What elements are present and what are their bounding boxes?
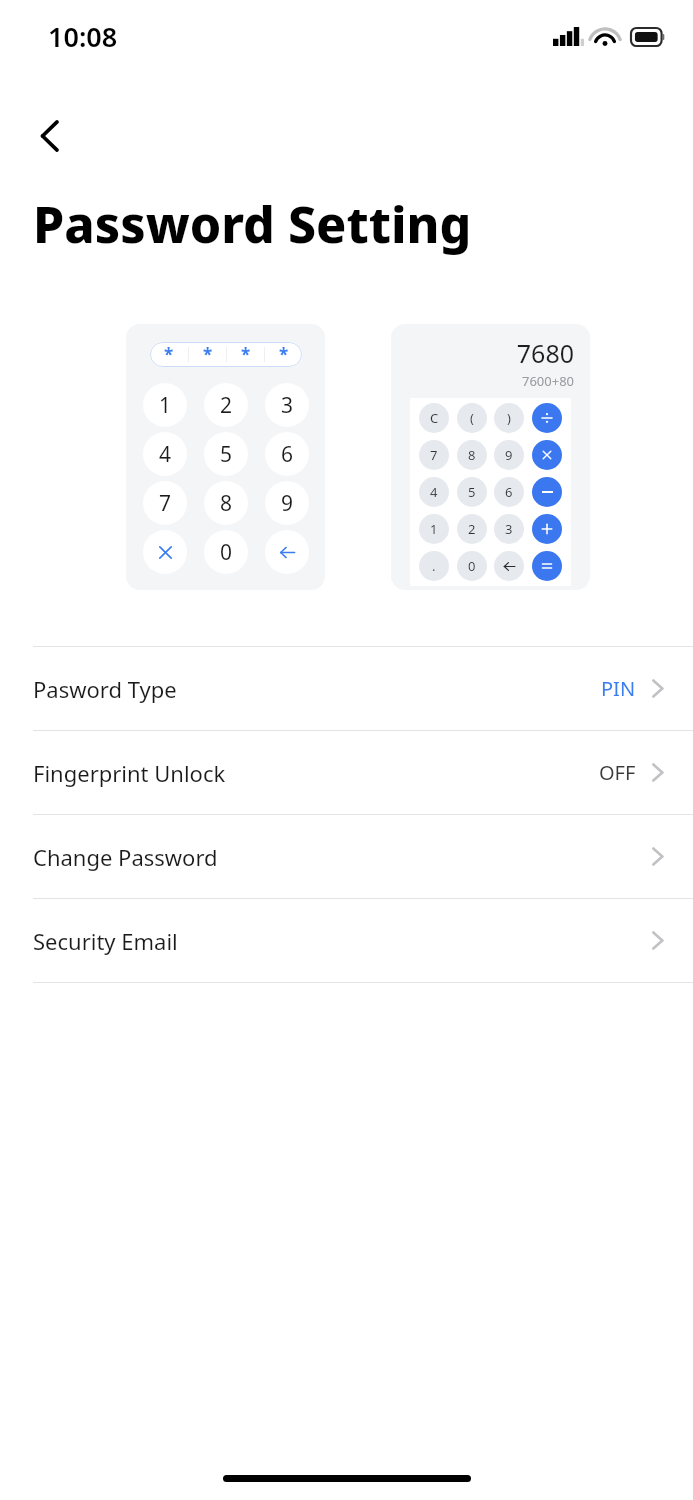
staticText: Change Password xyxy=(33,842,218,872)
button[interactable]: 9 xyxy=(494,440,524,470)
button[interactable]: Clear xyxy=(143,530,187,574)
staticText: Security Email xyxy=(33,926,178,956)
button[interactable]: 0 xyxy=(204,530,248,574)
button[interactable]: Change Password xyxy=(0,815,693,898)
button[interactable]: Backspace xyxy=(494,551,524,581)
staticText: * xyxy=(164,343,174,366)
staticText: 7 xyxy=(159,489,172,518)
staticText: 7 xyxy=(430,446,438,464)
button[interactable] xyxy=(532,514,562,544)
staticText: 5 xyxy=(220,440,233,469)
staticText: 8 xyxy=(220,489,233,518)
staticText: 6 xyxy=(505,483,513,501)
button[interactable]: 8 xyxy=(204,481,248,525)
staticText: 9 xyxy=(281,489,294,518)
staticText: 3 xyxy=(505,520,513,538)
staticText: 2 xyxy=(220,391,233,420)
button[interactable]: Backspace xyxy=(265,530,309,574)
button[interactable]: 2 xyxy=(204,383,248,427)
button[interactable]: Security Email xyxy=(0,899,693,982)
button[interactable]: 5 xyxy=(204,432,248,476)
button[interactable]: 4 xyxy=(419,477,449,507)
staticText: * xyxy=(203,343,213,366)
button[interactable] xyxy=(532,440,562,470)
staticText: Pasword Type xyxy=(33,674,177,704)
staticText: 6 xyxy=(281,440,294,469)
staticText: 7600+80 xyxy=(391,372,574,390)
button[interactable]: 3 xyxy=(494,514,524,544)
staticText: ( xyxy=(470,409,474,427)
button[interactable]: . xyxy=(419,551,449,581)
button[interactable]: 3 xyxy=(265,383,309,427)
button[interactable]: 7680 xyxy=(391,324,590,590)
button[interactable]: 4 xyxy=(143,432,187,476)
staticText: 1 xyxy=(430,520,438,538)
staticText: 0 xyxy=(468,557,476,575)
staticText: 8 xyxy=(468,446,476,464)
button[interactable]: Pasword Type xyxy=(0,647,693,730)
staticText: * xyxy=(279,343,289,366)
button[interactable]: 6 xyxy=(494,477,524,507)
button[interactable]: 2 xyxy=(457,514,487,544)
staticText: 5 xyxy=(468,483,476,501)
staticText: C xyxy=(430,409,439,427)
button[interactable]: 1 xyxy=(143,383,187,427)
button[interactable]: Back xyxy=(24,110,76,162)
button[interactable]: 1 xyxy=(419,514,449,544)
button[interactable]: 5 xyxy=(457,477,487,507)
staticText: 7680 xyxy=(391,336,574,370)
staticText: PIN xyxy=(601,675,636,702)
staticText: 3 xyxy=(281,391,294,420)
staticText: 9 xyxy=(505,446,513,464)
staticText: 0 xyxy=(220,538,233,567)
staticText: OFF xyxy=(599,759,636,786)
button[interactable]: 7 xyxy=(143,481,187,525)
staticText: 1 xyxy=(159,391,172,420)
button[interactable]: Fingerprint Unlock xyxy=(0,731,693,814)
button[interactable]: 7 xyxy=(419,440,449,470)
button[interactable]: 6 xyxy=(265,432,309,476)
staticText: ) xyxy=(507,409,511,427)
staticText: 10:08 xyxy=(48,18,118,55)
staticText: . xyxy=(432,557,436,575)
button[interactable]: ( xyxy=(457,403,487,433)
button[interactable] xyxy=(532,477,562,507)
button[interactable]: 8 xyxy=(457,440,487,470)
button[interactable]: * xyxy=(126,324,325,590)
button[interactable]: ) xyxy=(494,403,524,433)
staticText: Password Setting xyxy=(33,190,472,258)
button[interactable]: 0 xyxy=(457,551,487,581)
button[interactable] xyxy=(532,551,562,581)
staticText: 4 xyxy=(159,440,172,469)
staticText: Fingerprint Unlock xyxy=(33,758,226,788)
button[interactable]: 9 xyxy=(265,481,309,525)
button[interactable]: C xyxy=(419,403,449,433)
button[interactable] xyxy=(532,403,562,433)
staticText: 2 xyxy=(468,520,476,538)
staticText: 4 xyxy=(430,483,438,501)
staticText: * xyxy=(241,343,251,366)
